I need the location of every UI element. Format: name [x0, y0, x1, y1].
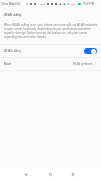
button[interactable]: WLAN calling toggle	[84, 48, 97, 54]
button[interactable]: Back	[14, 169, 38, 179]
staticText: 72%	[71, 2, 76, 5]
button[interactable]: Home	[38, 169, 62, 179]
button[interactable]: Mode	[0, 57, 101, 70]
staticText: 1.5K/s	[38, 2, 45, 5]
staticText: 10:49 PM	[83, 2, 95, 6]
button[interactable]: WLAN calling	[0, 44, 101, 57]
staticText: WLAN preferred	[73, 62, 93, 65]
staticText: WLAN calling	[4, 49, 21, 53]
staticText: China Mobile4G	[1, 2, 21, 6]
staticText: WLAN calling	[4, 13, 22, 17]
button[interactable]: Recents	[61, 169, 85, 179]
staticText: Mode	[4, 62, 12, 66]
staticText: When WLAN calling is on, your phone can …	[4, 23, 98, 39]
